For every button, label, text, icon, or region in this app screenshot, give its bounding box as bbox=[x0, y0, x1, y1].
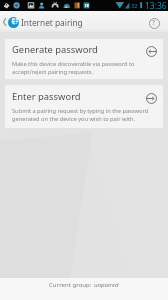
staticText: Generate password bbox=[12, 43, 98, 56]
staticText: unpaired bbox=[94, 280, 119, 288]
button[interactable]: Navigate up bbox=[0, 11, 20, 33]
button[interactable]: Generate bbox=[146, 46, 157, 57]
staticText: ? bbox=[152, 18, 156, 28]
button[interactable]: Generate password bbox=[5, 39, 163, 79]
staticText: 13:36 bbox=[145, 0, 167, 11]
staticText: Current group: bbox=[49, 280, 94, 288]
staticText: 32 bbox=[131, 2, 138, 9]
staticText: Internet pairing bbox=[21, 17, 83, 28]
button[interactable]: Enter bbox=[146, 93, 157, 104]
staticText: Submit a pairing request by typing in th… bbox=[12, 107, 149, 122]
button[interactable]: Help bbox=[144, 13, 164, 33]
staticText: Make this device discoverable via passwo… bbox=[12, 60, 135, 75]
button[interactable]: Enter password bbox=[5, 85, 163, 128]
staticText: Enter password bbox=[12, 90, 81, 103]
